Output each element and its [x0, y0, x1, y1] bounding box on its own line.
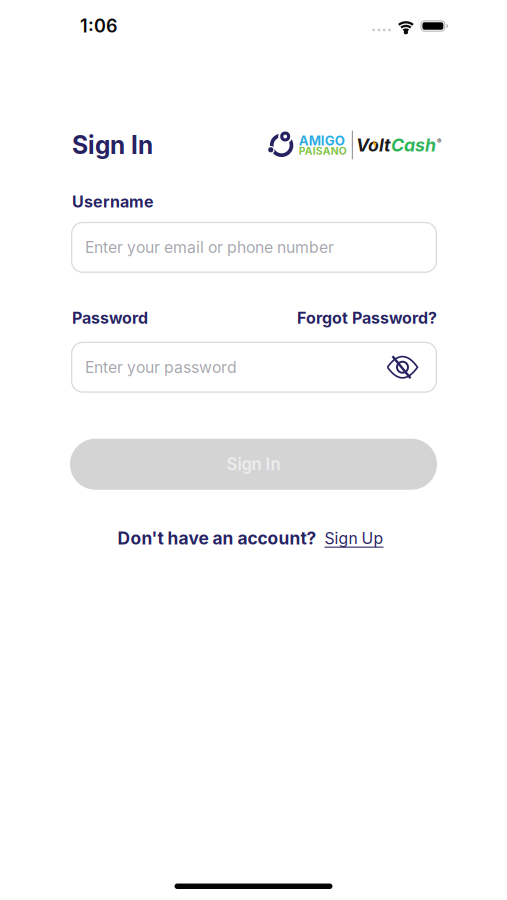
button[interactable]: [387, 354, 418, 380]
staticText: PAISANO: [299, 145, 347, 157]
staticText: Don't have an account?: [117, 528, 316, 549]
staticText: Sign In: [226, 454, 280, 474]
button[interactable]: Sign In: [70, 439, 437, 490]
staticText: AMIGO: [299, 133, 345, 149]
button[interactable]: Enter your password: [71, 342, 437, 393]
staticText: Password: [72, 308, 148, 328]
button[interactable]: Sign Up: [324, 529, 383, 548]
staticText: Username: [72, 192, 154, 211]
button[interactable]: Forgot Password?: [297, 308, 437, 328]
staticText: 1:06: [80, 15, 118, 37]
staticText: Cash: [391, 134, 436, 156]
staticText: Forgot Password?: [297, 308, 437, 328]
staticText: Enter your email or phone number: [85, 238, 334, 257]
button[interactable]: Enter your email or phone number: [71, 222, 437, 273]
staticText: ®: [437, 137, 441, 145]
staticText: Sign In: [72, 130, 153, 160]
staticText: Volt: [356, 134, 391, 156]
staticText: Enter your password: [85, 358, 237, 377]
staticText: Sign Up: [324, 529, 383, 548]
